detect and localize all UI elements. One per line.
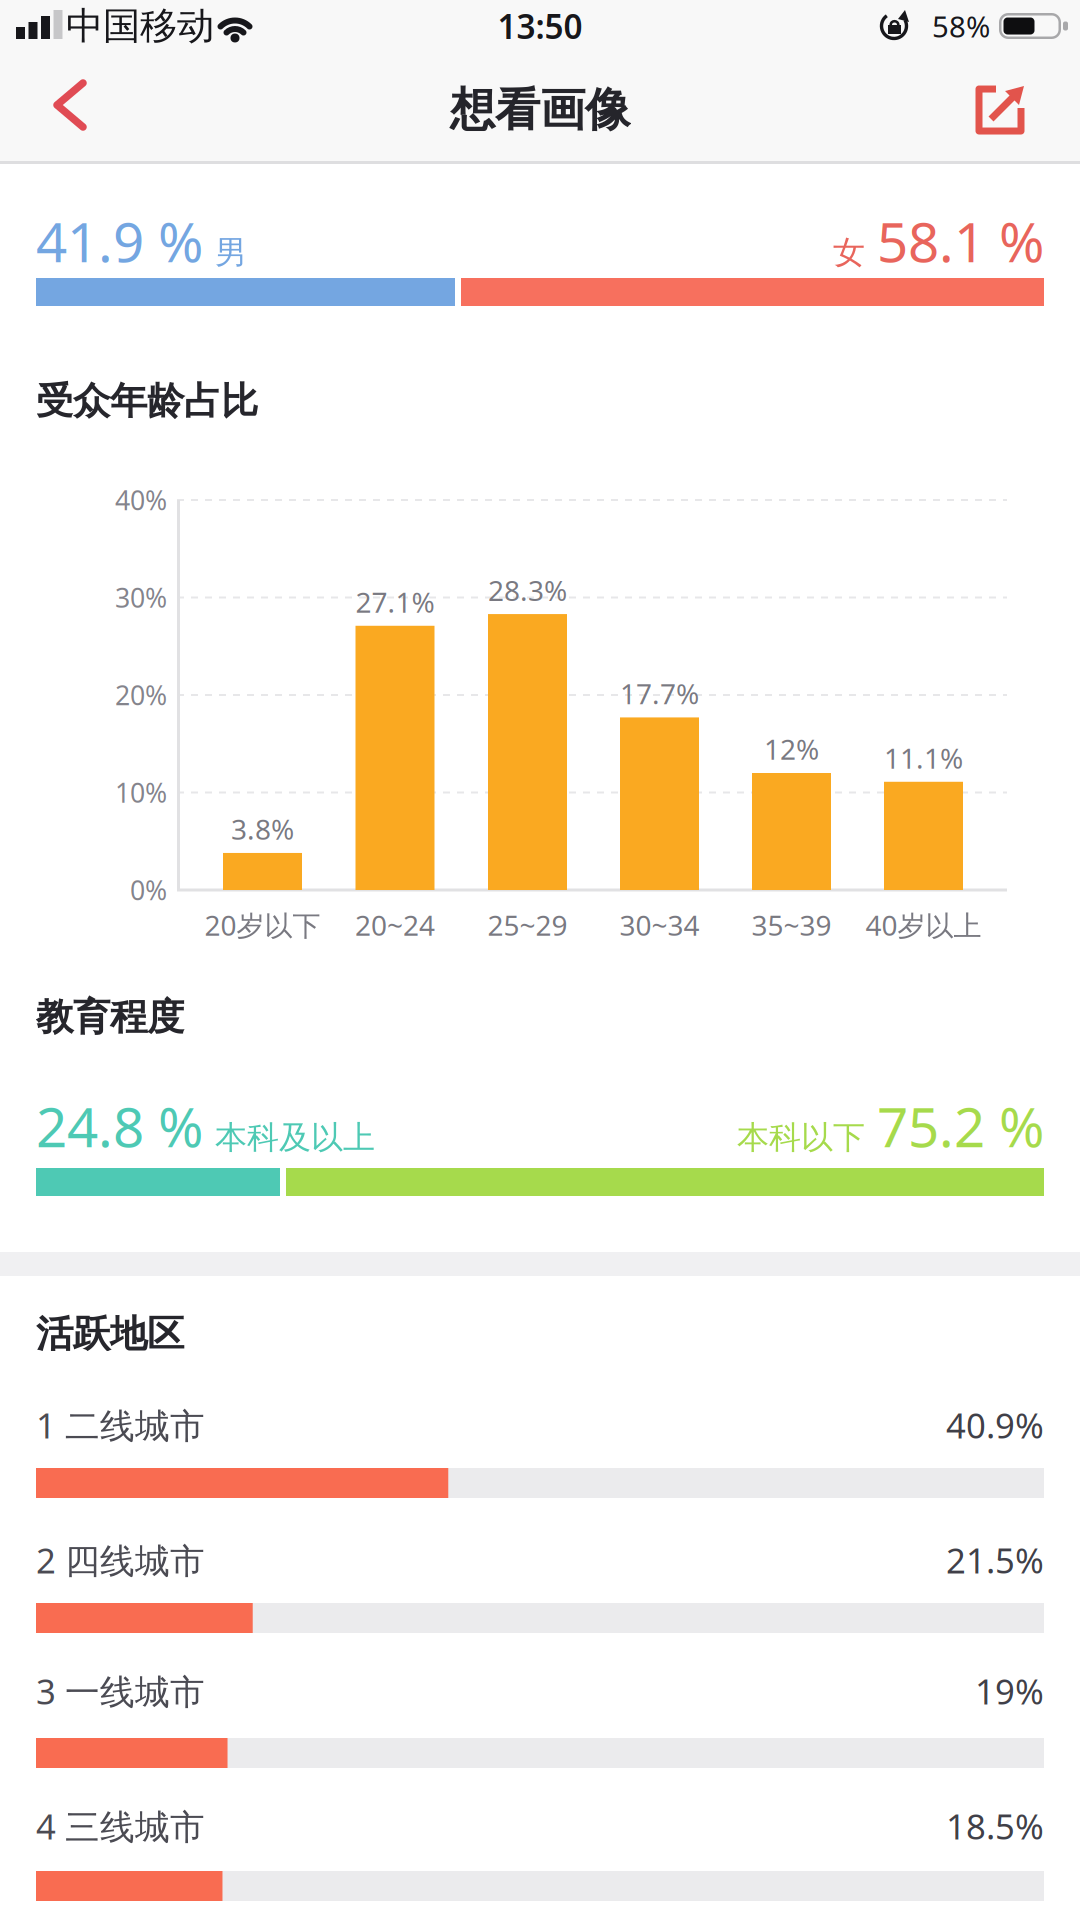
- staticText: 女: [833, 233, 865, 272]
- staticText: 58%: [932, 6, 990, 45]
- staticText: 13:50: [497, 4, 582, 48]
- staticText: 教育程度: [36, 994, 184, 1040]
- staticText: 35~39: [751, 906, 831, 944]
- staticText: 27.1%: [355, 583, 434, 620]
- staticText: 24.8 %: [36, 1090, 203, 1162]
- staticText: 20~24: [355, 906, 435, 944]
- staticText: 75.2 %: [877, 1090, 1044, 1162]
- staticText: 40.9%: [946, 1402, 1044, 1448]
- staticText: 40岁以上: [865, 906, 981, 944]
- staticText: 40%: [115, 482, 167, 518]
- staticText: 3.8%: [231, 810, 294, 848]
- staticText: 19%: [975, 1668, 1044, 1714]
- staticText: 男: [215, 233, 247, 272]
- staticText: 3 一线城市: [36, 1668, 205, 1714]
- button[interactable]: [39, 78, 99, 134]
- staticText: 本科及以上: [215, 1118, 375, 1157]
- staticText: 4 三线城市: [36, 1803, 205, 1849]
- staticText: 活跃地区: [36, 1311, 184, 1357]
- staticText: 11.1%: [884, 739, 963, 776]
- button[interactable]: [972, 84, 1028, 136]
- staticText: 41.9 %: [36, 205, 203, 277]
- staticText: 21.5%: [946, 1537, 1044, 1583]
- staticText: 中国移动: [66, 3, 214, 49]
- staticText: 0%: [130, 872, 167, 908]
- staticText: 18.5%: [946, 1803, 1044, 1849]
- staticText: 10%: [115, 775, 167, 810]
- staticText: 20%: [115, 677, 167, 713]
- staticText: 本科以下: [737, 1118, 865, 1157]
- staticText: 受众年龄占比: [36, 378, 258, 424]
- staticText: 2 四线城市: [36, 1537, 205, 1583]
- staticText: 20岁以下: [204, 906, 320, 944]
- staticText: 17.7%: [620, 675, 699, 712]
- staticText: 30%: [115, 580, 167, 615]
- staticText: 28.3%: [488, 571, 567, 609]
- staticText: 30~34: [619, 906, 699, 944]
- staticText: 想看画像: [450, 82, 630, 138]
- staticText: 25~29: [487, 906, 567, 944]
- staticText: 1 二线城市: [36, 1402, 205, 1448]
- staticText: 12%: [764, 730, 819, 768]
- staticText: 58.1 %: [877, 205, 1044, 277]
